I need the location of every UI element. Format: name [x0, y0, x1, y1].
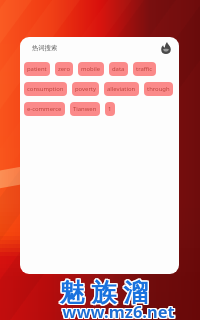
staticText: 魅 族 溜 [58, 273, 148, 307]
staticText: mobile [81, 65, 101, 73]
staticText: data [112, 65, 125, 73]
staticText: www.mz6.net [63, 299, 176, 320]
staticText: through [147, 85, 170, 93]
staticText: 热词搜索 [32, 44, 58, 52]
staticText: Tianwen [73, 105, 97, 113]
staticText: 魅 族 溜 [58, 275, 148, 309]
staticText: patient [27, 65, 47, 73]
staticText: www.mz6.net [61, 300, 174, 320]
staticText: poverty [75, 85, 96, 93]
button[interactable]: Hot search [160, 42, 172, 54]
staticText: www.mz6.net [62, 301, 175, 320]
staticText: www.mz6.net [62, 300, 175, 320]
staticText: 魅 族 溜 [60, 275, 150, 309]
button[interactable]: traffic [133, 62, 156, 76]
staticText: 魅 族 溜 [59, 274, 149, 308]
button[interactable]: zero [55, 62, 73, 76]
button[interactable]: patient [24, 62, 50, 76]
staticText: e-commerce [27, 105, 62, 113]
staticText: alleviation [107, 85, 136, 93]
button[interactable]: through [144, 82, 173, 96]
button[interactable]: Tianwen [70, 102, 100, 116]
staticText: traffic [136, 65, 153, 73]
staticText: 1 [108, 105, 112, 113]
button[interactable]: poverty [72, 82, 99, 96]
staticText: www.mz6.net [63, 300, 176, 320]
staticText: www.mz6.net [62, 299, 175, 320]
staticText: www.mz6.net [61, 301, 174, 320]
button[interactable]: data [109, 62, 128, 76]
staticText: www.mz6.net [63, 301, 176, 320]
staticText: 魅 族 溜 [58, 274, 148, 308]
staticText: 魅 族 溜 [60, 274, 150, 308]
staticText: 魅 族 溜 [59, 275, 149, 309]
staticText: consumption [27, 85, 64, 93]
staticText: 魅 族 溜 [60, 273, 150, 307]
staticText: www.mz6.net [61, 299, 174, 320]
button[interactable]: alleviation [104, 82, 139, 96]
staticText: zero [58, 65, 70, 73]
button[interactable]: consumption [24, 82, 67, 96]
button[interactable]: e-commerce [24, 102, 65, 116]
button[interactable]: mobile [78, 62, 104, 76]
staticText: 魅 族 溜 [59, 273, 149, 307]
button[interactable]: 1 [105, 102, 115, 116]
